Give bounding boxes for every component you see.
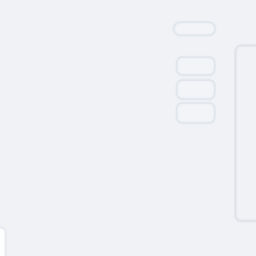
button[interactable]: Row one bbox=[174, 22, 215, 35]
button[interactable]: Row two bbox=[177, 57, 215, 75]
button[interactable]: Row four bbox=[177, 103, 215, 123]
button[interactable]: Row three bbox=[177, 80, 215, 99]
